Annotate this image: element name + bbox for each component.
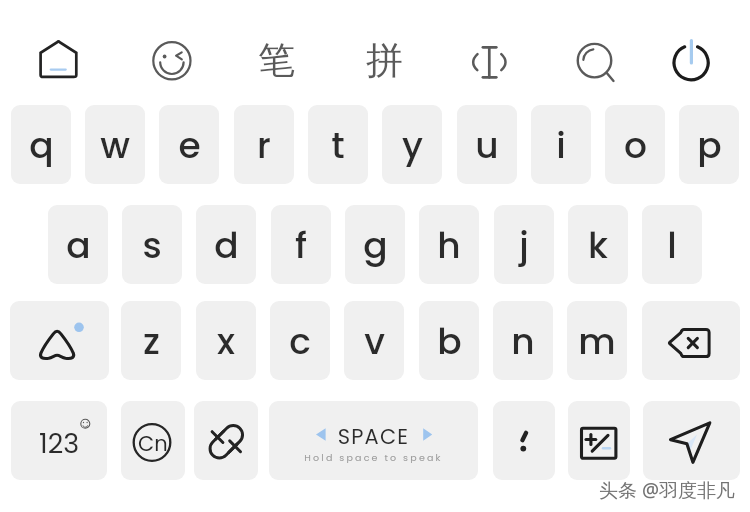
button[interactable]: b bbox=[419, 301, 479, 380]
button[interactable]: 拼 bbox=[359, 30, 409, 90]
button[interactable]: w bbox=[85, 105, 145, 184]
button[interactable]: Switch language bbox=[121, 401, 185, 480]
button[interactable]: Home bbox=[32, 32, 85, 88]
button[interactable]: i bbox=[531, 105, 591, 184]
staticText: Cn bbox=[138, 429, 168, 458]
button[interactable]: e bbox=[159, 105, 219, 184]
button[interactable]: q bbox=[11, 105, 71, 184]
button[interactable]: Move cursor bbox=[464, 34, 516, 90]
staticText: x bbox=[217, 316, 235, 366]
button[interactable]: p bbox=[679, 105, 739, 184]
staticText: j bbox=[519, 220, 529, 270]
staticText: a bbox=[66, 220, 91, 270]
staticText: SPACE bbox=[269, 422, 478, 480]
button[interactable]: Shift bbox=[10, 301, 109, 380]
button[interactable]: v bbox=[344, 301, 404, 380]
button[interactable]: Search bbox=[570, 35, 622, 89]
button[interactable]: SPACE bbox=[269, 401, 478, 480]
button[interactable]: x bbox=[196, 301, 256, 380]
staticText: s bbox=[142, 220, 162, 270]
button[interactable]: t bbox=[308, 105, 368, 184]
button[interactable]: n bbox=[493, 301, 553, 380]
staticText: v bbox=[364, 316, 385, 366]
button[interactable]: j bbox=[494, 205, 554, 284]
staticText: u bbox=[475, 120, 499, 170]
staticText: q bbox=[29, 120, 54, 170]
button[interactable]: k bbox=[568, 205, 628, 284]
button[interactable]: l bbox=[642, 205, 702, 284]
staticText: 头条 @羽度非凡 bbox=[599, 477, 736, 503]
button[interactable]: Emoji bbox=[146, 35, 198, 87]
staticText: i bbox=[556, 120, 566, 170]
staticText: g bbox=[363, 220, 388, 270]
button[interactable]: u bbox=[457, 105, 517, 184]
button[interactable]: z bbox=[121, 301, 181, 380]
staticText: m bbox=[578, 316, 616, 366]
staticText: h bbox=[437, 220, 461, 270]
button[interactable]: Punctuation bbox=[493, 401, 555, 480]
button[interactable]: m bbox=[567, 301, 627, 380]
staticText: c bbox=[289, 316, 311, 366]
button[interactable]: Send bbox=[643, 401, 740, 480]
staticText: r bbox=[257, 120, 271, 170]
button[interactable]: r bbox=[234, 105, 294, 184]
button[interactable]: 笔 bbox=[251, 30, 301, 90]
button[interactable]: f bbox=[271, 205, 331, 284]
staticText: 123 bbox=[39, 425, 80, 463]
staticText: b bbox=[437, 316, 462, 366]
staticText: 拼 bbox=[366, 37, 403, 84]
staticText: Hold space to speak bbox=[269, 451, 478, 480]
button[interactable]: Numbers and symbols bbox=[11, 401, 107, 480]
staticText: p bbox=[697, 120, 722, 170]
button[interactable]: Symbols bbox=[568, 401, 630, 480]
staticText: e bbox=[178, 120, 201, 170]
button[interactable]: a bbox=[48, 205, 108, 284]
staticText: t bbox=[331, 120, 345, 170]
button[interactable]: y bbox=[382, 105, 442, 184]
staticText: y bbox=[402, 120, 423, 170]
button[interactable]: g bbox=[345, 205, 405, 284]
button[interactable]: c bbox=[270, 301, 330, 380]
button[interactable]: o bbox=[605, 105, 665, 184]
staticText: d bbox=[214, 220, 239, 270]
button[interactable]: d bbox=[196, 205, 256, 284]
staticText: w bbox=[100, 120, 130, 170]
button[interactable]: Power bbox=[665, 33, 719, 91]
staticText: k bbox=[588, 220, 608, 270]
button[interactable]: h bbox=[419, 205, 479, 284]
staticText: l bbox=[667, 220, 677, 270]
staticText: f bbox=[295, 220, 307, 270]
button[interactable]: s bbox=[122, 205, 182, 284]
staticText: 笔 bbox=[258, 37, 295, 84]
button[interactable]: Backspace bbox=[642, 301, 740, 380]
button[interactable]: Disconnect bbox=[194, 401, 258, 480]
staticText: o bbox=[624, 120, 647, 170]
staticText: z bbox=[143, 316, 160, 366]
staticText: n bbox=[511, 316, 535, 366]
